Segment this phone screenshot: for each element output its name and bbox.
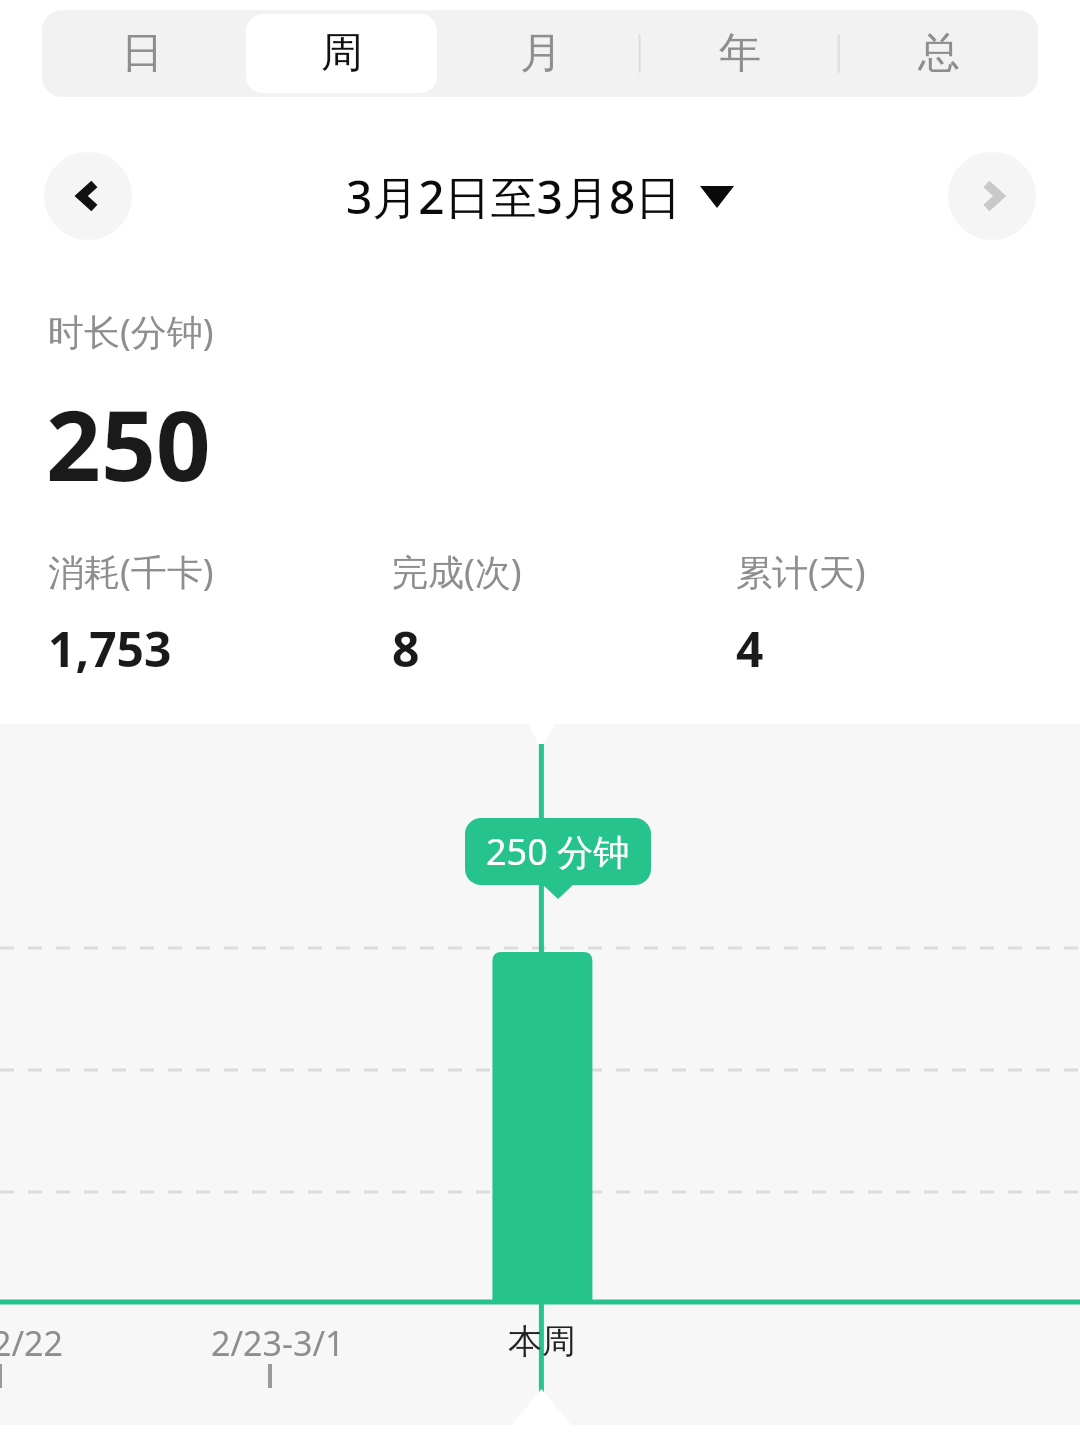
- staticText: 8: [392, 616, 420, 681]
- button[interactable]: Previous week: [44, 152, 132, 240]
- button[interactable]: 月: [445, 14, 636, 93]
- staticText: 年: [719, 27, 761, 80]
- staticText: 累计(天): [736, 547, 866, 596]
- staticText: 4: [736, 616, 764, 681]
- button[interactable]: 周: [246, 14, 437, 93]
- staticText: 周: [321, 27, 363, 80]
- button[interactable]: 日: [46, 14, 238, 93]
- staticText: 总: [918, 27, 960, 80]
- staticText: -2/22: [0, 1320, 63, 1366]
- staticText: 日: [121, 27, 163, 80]
- button[interactable]: Next week: [948, 152, 1036, 240]
- staticText: 1,753: [48, 616, 172, 681]
- staticText: 本周: [508, 1320, 576, 1363]
- button[interactable]: 3月2日至3月8日: [346, 165, 734, 228]
- staticText: 月: [520, 27, 562, 80]
- staticText: 250 分钟: [486, 827, 630, 876]
- staticText: 250: [46, 378, 211, 509]
- staticText: 消耗(千卡): [48, 547, 214, 596]
- staticText: 2/23-3/1: [211, 1320, 345, 1366]
- staticText: 时长(分钟): [48, 307, 214, 356]
- button[interactable]: 年: [644, 14, 835, 93]
- button[interactable]: 250 分钟: [486, 827, 630, 876]
- staticText: 3月2日至3月8日: [346, 165, 682, 228]
- staticText: 完成(次): [392, 547, 522, 596]
- button[interactable]: 总: [843, 14, 1034, 93]
